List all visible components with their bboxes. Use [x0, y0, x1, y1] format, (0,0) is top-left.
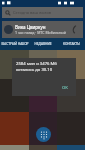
button[interactable]: Сегодня ваш вызов: [2, 7, 83, 18]
staticText: КОНТАКТЫ: [63, 42, 80, 46]
button[interactable]: [29, 79, 57, 112]
button[interactable]: OK: [62, 85, 68, 91]
button[interactable]: Вика Цвиркун: [2, 21, 83, 38]
staticText: БЫСТРЫЙ НАБОР: [1, 42, 29, 46]
button[interactable]: [0, 79, 29, 112]
button[interactable]: НЕДАВНИЕ: [29, 38, 57, 50]
button[interactable]: [29, 46, 57, 79]
button[interactable]: КОНТАКТЫ: [57, 38, 85, 50]
button[interactable]: БЫСТРЫЙ НАБОР: [0, 38, 29, 50]
staticText: OK: [62, 85, 68, 91]
staticText: Сегодня ваш вызов: [13, 10, 52, 15]
staticText: Вика Цвиркун: [15, 24, 46, 30]
button[interactable]: Dialpad: [36, 127, 51, 142]
button[interactable]: [57, 79, 85, 112]
staticText: НЕДАВНИЕ: [34, 42, 52, 46]
button[interactable]: Call: [73, 25, 83, 35]
button[interactable]: [29, 112, 57, 145]
staticText: 2584 мин и 3476 Мб остались до 30.10: [16, 61, 57, 72]
staticText: 1 час назад · МТС Мобильный: [15, 30, 66, 35]
button[interactable]: [0, 46, 29, 79]
button[interactable]: [57, 46, 85, 79]
